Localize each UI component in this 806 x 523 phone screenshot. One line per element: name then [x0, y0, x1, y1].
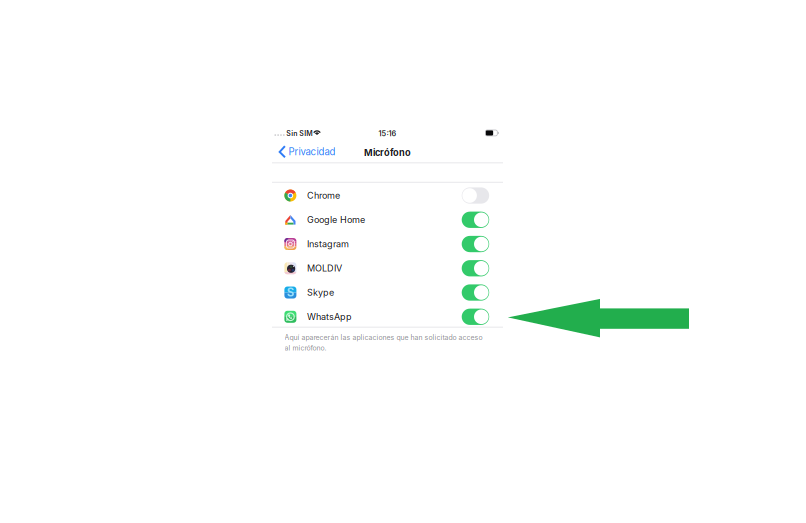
- staticText: Aquí aparecerán las aplicaciones que han…: [285, 333, 483, 342]
- staticText: 15:16: [378, 129, 396, 138]
- staticText: Skype: [307, 287, 334, 298]
- staticText: Chrome: [307, 190, 340, 201]
- button[interactable]: Instagram: [272, 232, 503, 256]
- button[interactable]: S: [272, 280, 503, 305]
- staticText: Sin SIM: [286, 129, 312, 138]
- staticText: al micrófono.: [285, 344, 327, 352]
- staticText: WhatsApp: [307, 311, 352, 322]
- staticText: Google Home: [307, 214, 365, 225]
- staticText: Micrófono: [364, 147, 411, 158]
- staticText: Instagram: [307, 238, 349, 249]
- staticText: Privacidad: [289, 146, 336, 158]
- button[interactable]: WhatsApp: [272, 305, 503, 329]
- button[interactable]: Chrome: [272, 183, 503, 208]
- button[interactable]: MOLDIV: [272, 256, 503, 280]
- staticText: S: [287, 285, 294, 299]
- button[interactable]: Google Home: [272, 208, 503, 232]
- staticText: MOLDIV: [307, 263, 342, 274]
- button[interactable]: Privacidad: [272, 144, 336, 160]
